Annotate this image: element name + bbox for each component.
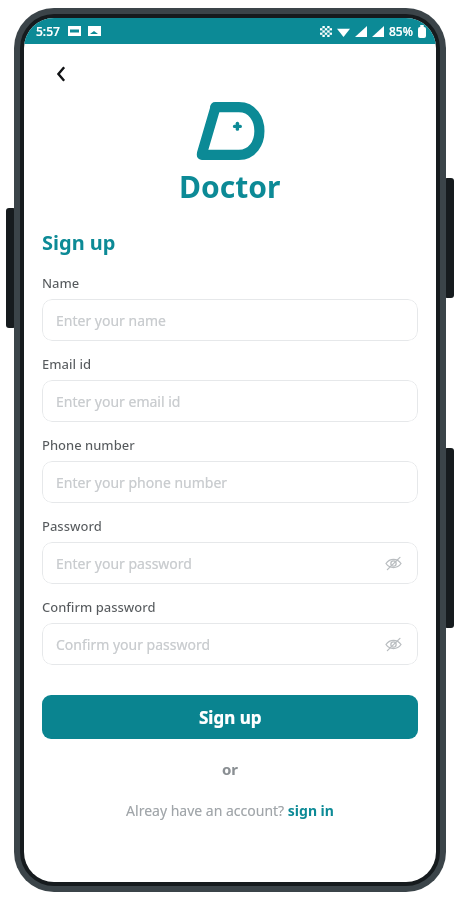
- button[interactable]: Enter your password: [42, 542, 418, 584]
- button[interactable]: Enter your phone number: [42, 461, 418, 503]
- staticText: Sign up: [199, 706, 262, 729]
- staticText: Confirm your password: [56, 635, 211, 654]
- staticText: Phone number: [42, 436, 135, 454]
- button[interactable]: Back: [42, 54, 82, 94]
- button[interactable]: Enter your email id: [42, 380, 418, 422]
- staticText: Sign up: [42, 229, 116, 256]
- staticText: Confirm password: [42, 598, 156, 616]
- staticText: Password: [42, 517, 102, 535]
- staticText: Email id: [42, 355, 91, 373]
- button[interactable]: Confirm your password: [42, 623, 418, 665]
- staticText: Alreay have an account? sign in: [126, 801, 334, 820]
- staticText: or: [42, 759, 418, 779]
- staticText: 85%: [389, 23, 413, 39]
- button[interactable]: Show password: [382, 633, 404, 655]
- staticText: Enter your password: [56, 554, 192, 573]
- staticText: Enter your phone number: [56, 473, 228, 492]
- staticText: 5:57: [36, 23, 60, 39]
- button[interactable]: Alreay have an account? sign in: [42, 801, 418, 820]
- staticText: Enter your name: [56, 311, 166, 330]
- button[interactable]: Enter your name: [42, 299, 418, 341]
- staticText: Name: [42, 274, 80, 292]
- button[interactable]: Show password: [382, 552, 404, 574]
- staticText: Enter your email id: [56, 392, 181, 411]
- staticText: Doctor: [179, 166, 281, 207]
- button[interactable]: Sign up: [42, 695, 418, 739]
